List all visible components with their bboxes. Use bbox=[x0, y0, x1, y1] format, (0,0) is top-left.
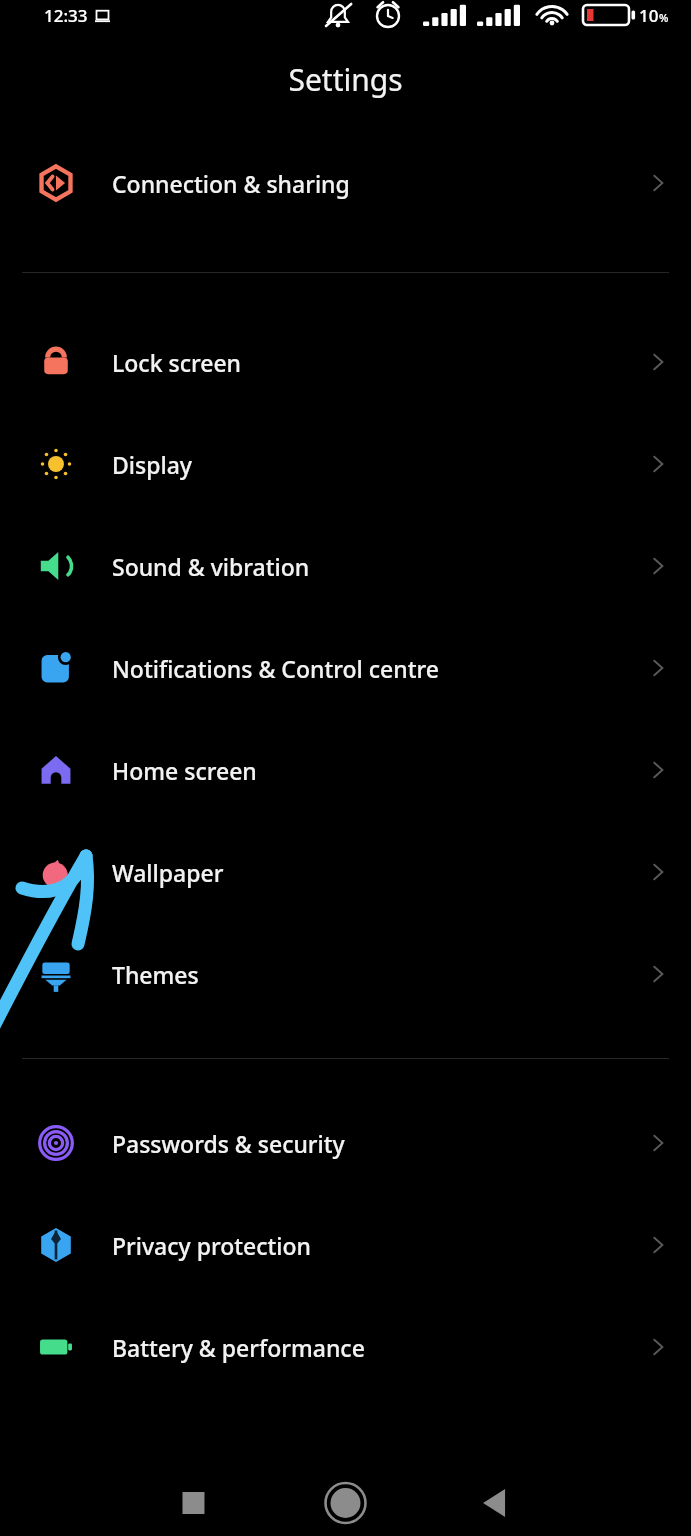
other: Navigation bar bbox=[0, 1470, 691, 1536]
staticText: Connection & sharing bbox=[112, 168, 647, 199]
staticText: Passwords & security bbox=[112, 1128, 647, 1159]
staticText: Settings bbox=[288, 59, 403, 100]
staticText: Battery & performance bbox=[112, 1332, 647, 1363]
staticText: Home screen bbox=[112, 755, 647, 786]
staticText: Themes bbox=[112, 959, 647, 990]
staticText: Lock screen bbox=[112, 347, 647, 378]
button[interactable]: Home screen bbox=[0, 719, 691, 821]
button[interactable]: Wallpaper bbox=[0, 821, 691, 923]
button[interactable]: Battery & performance bbox=[0, 1296, 691, 1398]
staticText: 12:33 bbox=[44, 4, 88, 27]
button[interactable]: Notifications & Control centre bbox=[0, 617, 691, 719]
staticText: Sound & vibration bbox=[112, 551, 647, 582]
staticText: Wallpaper bbox=[112, 857, 647, 888]
button[interactable]: Passwords & security bbox=[0, 1092, 691, 1194]
button[interactable]: Sound & vibration bbox=[0, 515, 691, 617]
button[interactable]: Privacy protection bbox=[0, 1194, 691, 1296]
button[interactable]: Themes bbox=[0, 923, 691, 1025]
staticText: Notifications & Control centre bbox=[112, 653, 647, 684]
staticText: Display bbox=[112, 449, 647, 480]
staticText: Privacy protection bbox=[112, 1230, 647, 1261]
staticText: 10 bbox=[639, 4, 659, 27]
button[interactable]: Lock screen bbox=[0, 311, 691, 413]
button[interactable]: Display bbox=[0, 413, 691, 515]
staticText: % bbox=[659, 10, 669, 25]
button[interactable]: Connection & sharing bbox=[0, 132, 691, 234]
